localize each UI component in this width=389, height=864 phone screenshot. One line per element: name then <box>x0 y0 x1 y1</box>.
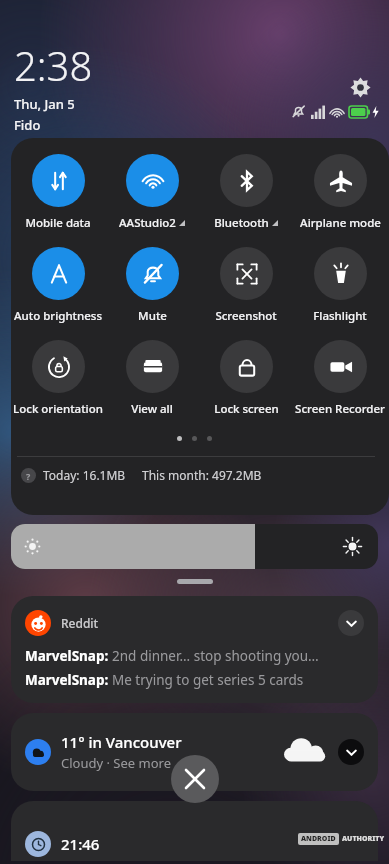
staticText: Mute <box>138 308 167 324</box>
button[interactable]: Screen Recorder <box>293 340 387 417</box>
staticText: AUTHORITY <box>342 834 385 844</box>
staticText: Flashlight <box>313 308 367 324</box>
staticText: Screenshot <box>215 308 277 324</box>
staticText: 11° in Vancouver <box>61 732 182 752</box>
button[interactable]: Bluetooth <box>199 154 293 231</box>
staticText: Reddit <box>61 615 99 631</box>
button[interactable]: View all <box>105 340 199 417</box>
button[interactable]: 11° in Vancouver <box>11 713 378 791</box>
staticText: Airplane mode <box>300 215 381 231</box>
button[interactable]: Auto brightness <box>11 247 105 324</box>
staticText: Lock orientation <box>13 401 103 417</box>
staticText: Me trying to get series 5 cards <box>112 671 304 689</box>
staticText: Bluetooth <box>214 215 269 231</box>
staticText: AAStudio2 <box>119 215 176 231</box>
button[interactable]: Settings <box>345 72 375 102</box>
staticText: View all <box>131 401 173 417</box>
button[interactable]: Expand notification <box>338 610 364 636</box>
staticText: This month: 497.2MB <box>142 467 262 483</box>
staticText: Today: 16.1MB <box>43 467 126 483</box>
staticText: ? <box>26 470 31 482</box>
button[interactable]: Screenshot <box>199 247 293 324</box>
button[interactable]: Mobile data <box>11 154 105 231</box>
button[interactable]: Lock orientation <box>11 340 105 417</box>
button[interactable]: Lock screen <box>199 340 293 417</box>
staticText: Screen Recorder <box>295 401 385 417</box>
staticText: ANDROID <box>301 834 336 844</box>
staticText: Fido <box>14 116 41 134</box>
button[interactable]: Mute <box>105 247 199 324</box>
staticText: 21:46 <box>61 834 100 854</box>
staticText: Lock screen <box>214 401 279 417</box>
button[interactable]: AAStudio2 <box>105 154 199 231</box>
staticText: Cloudy · See more <box>61 754 171 772</box>
staticText: Auto brightness <box>14 308 102 324</box>
button[interactable]: Flashlight <box>293 247 387 324</box>
staticText: 2:38 <box>14 38 93 92</box>
button[interactable]: Dismiss notification <box>171 755 219 803</box>
button[interactable]: Reddit <box>11 596 378 703</box>
staticText: MarvelSnap: <box>25 647 112 665</box>
staticText: MarvelSnap: <box>25 671 112 689</box>
staticText: Thu, Jan 5 <box>14 95 75 113</box>
button[interactable]: 21:46 <box>11 801 378 861</box>
button[interactable]: Expand notification <box>338 739 364 765</box>
button[interactable]: Airplane mode <box>293 154 387 231</box>
staticText: 2nd dinner... stop shooting you… <box>112 647 319 665</box>
staticText: Mobile data <box>25 215 91 231</box>
button[interactable]: Brightness <box>11 524 378 569</box>
